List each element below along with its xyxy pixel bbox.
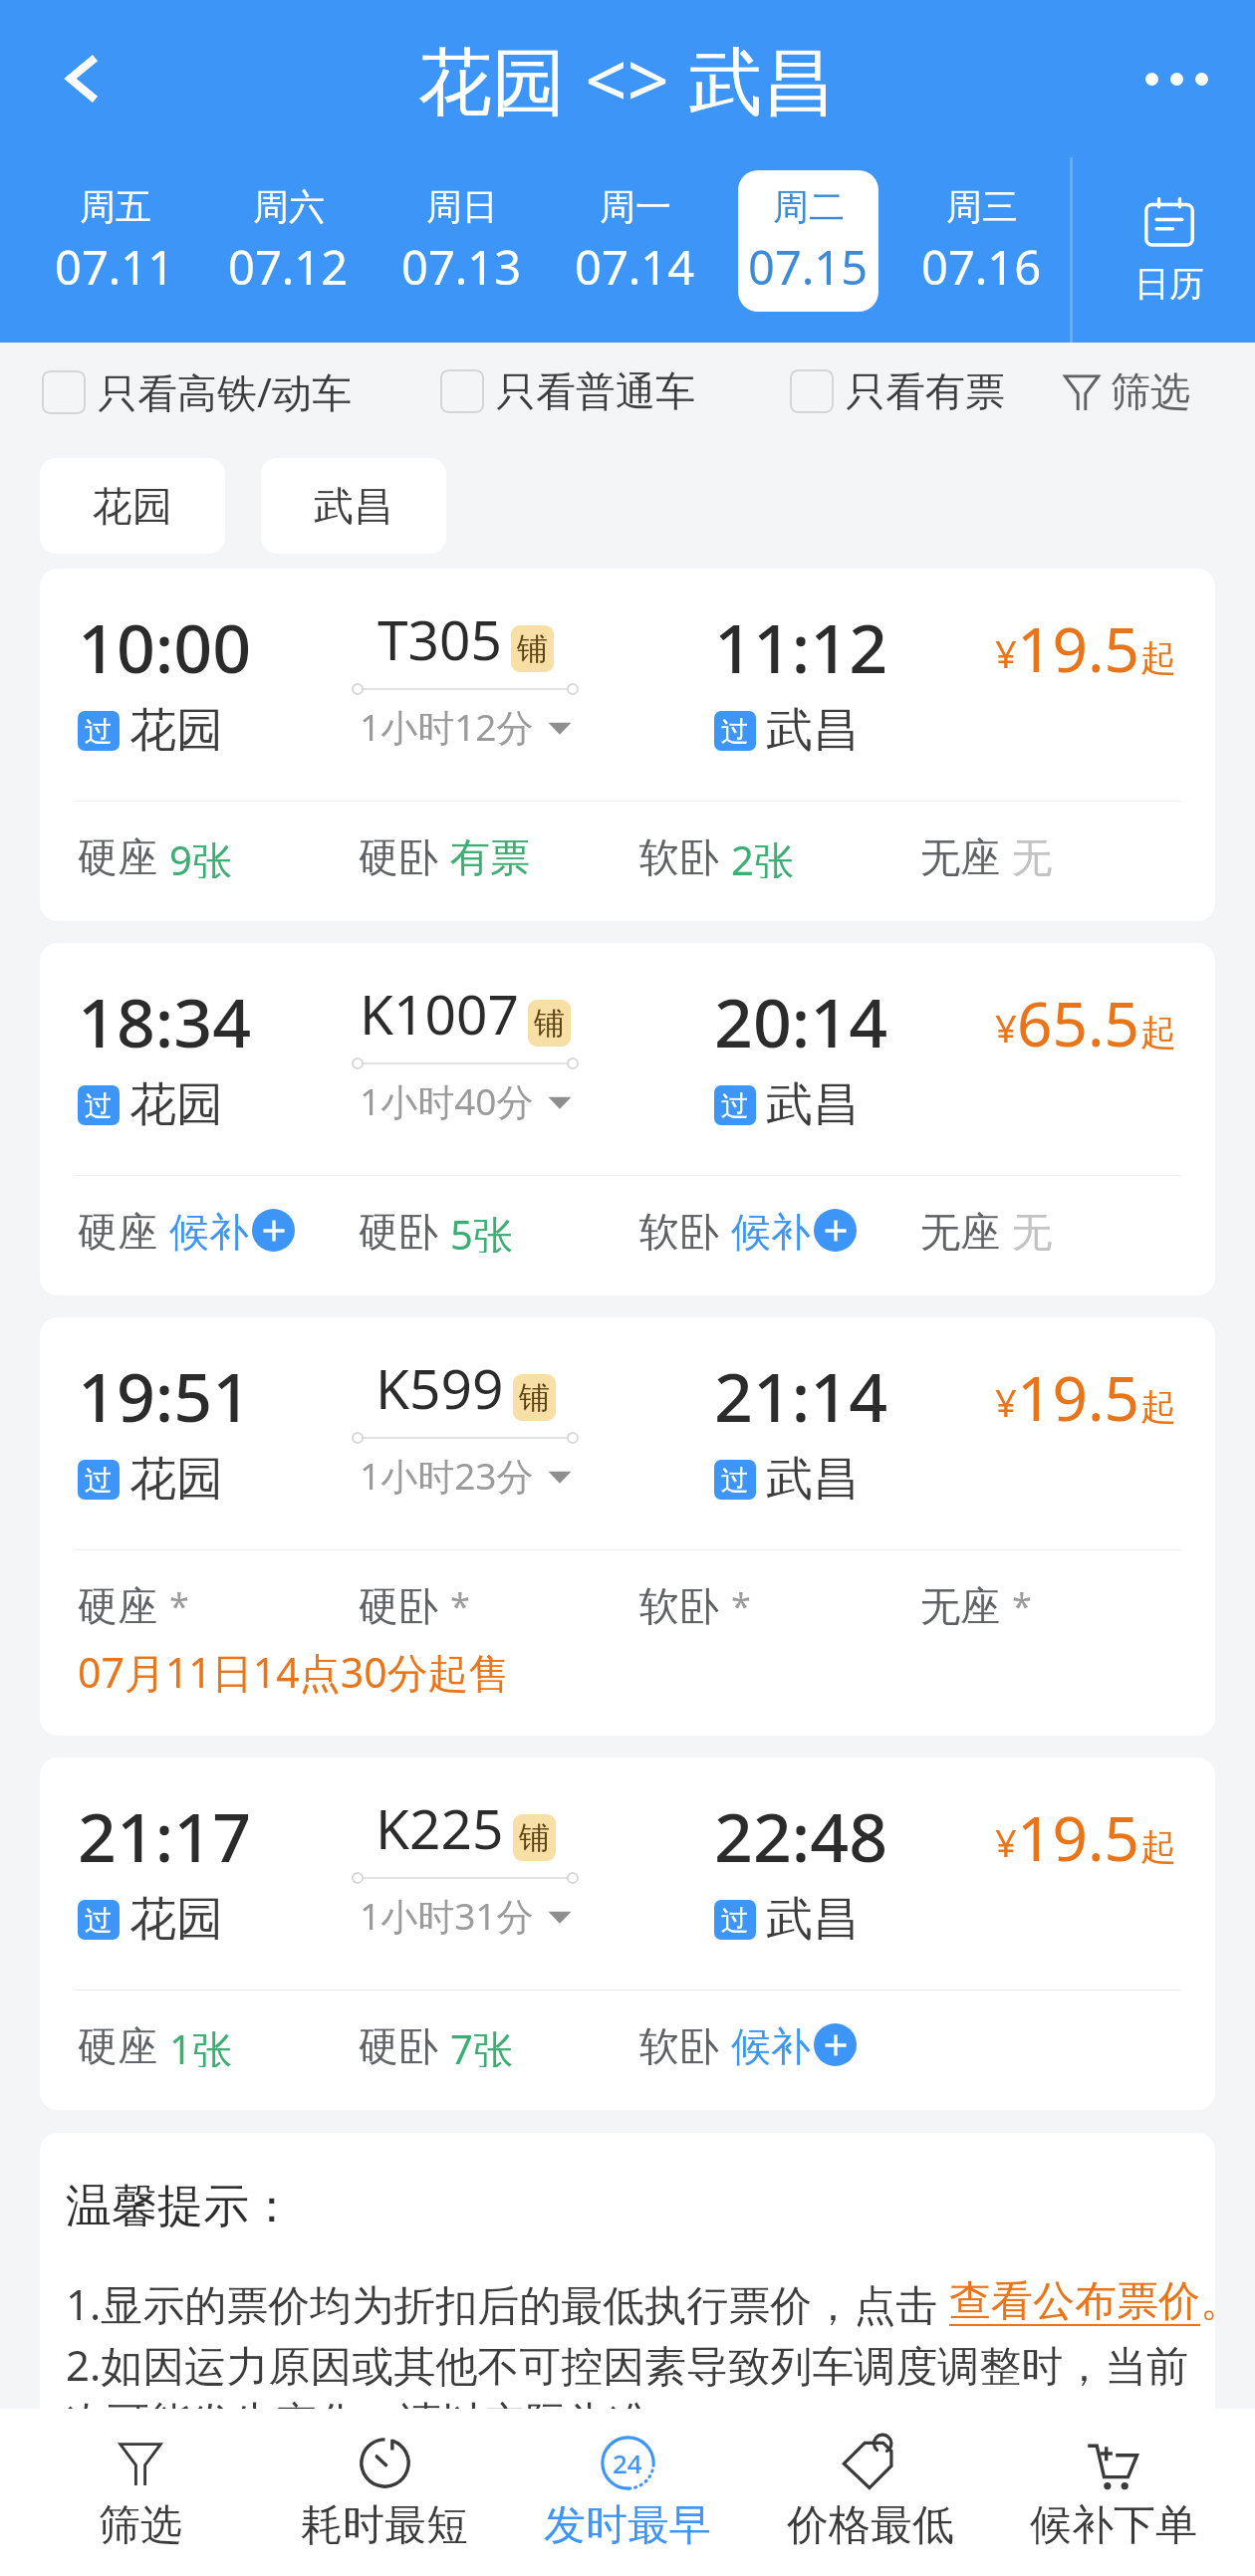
staticText: 只看普通车 [496, 366, 695, 416]
staticText: 周日 [426, 184, 498, 229]
staticText: 07.11 [55, 235, 175, 299]
button[interactable]: 19:51 [40, 1317, 1215, 1736]
staticText: 周五 [80, 184, 151, 229]
staticText: 软卧 [639, 1581, 719, 1627]
staticText: 花园 [129, 1450, 223, 1509]
staticText: 过 [85, 1903, 113, 1938]
staticText: K599 [376, 1350, 504, 1425]
staticText: 武昌 [766, 701, 860, 760]
staticText: 过 [85, 1088, 113, 1123]
button[interactable]: 10:00 [40, 569, 1215, 921]
button[interactable]: More options [1133, 36, 1219, 121]
staticText: 只看有票 [846, 366, 1005, 416]
staticText: 无座 [920, 1207, 1000, 1253]
staticText: ¥ [995, 627, 1017, 679]
staticText: 过 [721, 1088, 749, 1123]
staticText: * [450, 1581, 470, 1627]
staticText: 发时最早 [544, 2499, 711, 2552]
staticText: 花园 <> 武昌 [418, 29, 837, 129]
staticText: * [731, 1581, 751, 1627]
staticText: 周一 [600, 184, 671, 229]
staticText: 过 [721, 1903, 749, 1938]
staticText: 过 [85, 1463, 113, 1498]
button[interactable]: 周三 [894, 157, 1068, 325]
button[interactable]: 只看高铁/动车 [42, 364, 352, 419]
staticText: 11:12 [714, 600, 888, 693]
button[interactable]: 日历 [1088, 157, 1255, 343]
staticText: 硬座 [78, 1581, 157, 1627]
staticText: 筛选 [99, 2499, 182, 2552]
staticText: 硬卧 [359, 1207, 438, 1253]
staticText: 无座 [920, 832, 1000, 878]
button[interactable]: 周二 [721, 157, 894, 325]
staticText: 22:48 [714, 1789, 888, 1882]
staticText: 硬卧 [359, 2021, 438, 2067]
staticText: 温馨提示： [66, 2178, 295, 2235]
button[interactable]: 21:17 [40, 1757, 1215, 2110]
staticText: 筛选 [1111, 366, 1190, 416]
button[interactable]: 周六 [201, 157, 375, 325]
staticText: 07.13 [401, 235, 522, 299]
button[interactable]: 周一 [548, 157, 721, 325]
button[interactable]: 武昌 [261, 458, 446, 554]
button[interactable]: Back [40, 36, 125, 121]
staticText: 65.5 [1017, 981, 1140, 1064]
staticText: 武昌 [314, 481, 393, 531]
staticText: ¥ [995, 1376, 1017, 1428]
staticText: ¥ [995, 1816, 1017, 1868]
button[interactable]: 价格最低 [749, 2409, 992, 2576]
staticText: 有票 [450, 832, 530, 878]
staticText: 过 [721, 1463, 749, 1498]
staticText: 只看高铁/动车 [98, 364, 352, 419]
staticText: 硬卧 [359, 1581, 438, 1627]
button[interactable]: 周日 [375, 157, 548, 325]
button[interactable]: 只看有票 [790, 366, 1005, 416]
button[interactable]: 筛选 [18, 2409, 262, 2576]
staticText: 武昌 [766, 1075, 860, 1134]
staticText: 1张 [169, 2021, 232, 2067]
button[interactable]: 耗时最短 [262, 2409, 506, 2576]
staticText: 铺 [517, 629, 548, 668]
button[interactable]: 周五 [28, 157, 201, 325]
staticText: 1小时12分 [360, 701, 534, 752]
staticText: 软卧 [639, 2021, 719, 2067]
staticText: 软卧 [639, 1207, 719, 1253]
staticText: 24 [613, 2446, 642, 2480]
staticText: 无 [1012, 832, 1052, 878]
staticText: 候补下单 [1030, 2499, 1197, 2552]
staticText: 铺 [534, 1004, 565, 1043]
staticText: 无座 [920, 1581, 1000, 1627]
staticText: 武昌 [766, 1890, 860, 1949]
button[interactable]: 18:34 [40, 943, 1215, 1295]
staticText: 起 [1140, 635, 1176, 680]
staticText: 07.15 [748, 235, 869, 299]
staticText: 07.16 [921, 235, 1042, 299]
staticText: 硬座 [78, 1207, 157, 1253]
button[interactable]: 候补下单 [992, 2409, 1235, 2576]
staticText: 花园 [129, 1075, 223, 1134]
staticText: 候补 [731, 1207, 811, 1253]
staticText: 5张 [450, 1207, 513, 1253]
staticText: 周六 [253, 184, 325, 229]
staticText: 19.5 [1017, 1795, 1140, 1879]
staticText: 07.14 [575, 235, 695, 299]
button[interactable]: 24 [506, 2409, 749, 2576]
staticText: T305 [377, 601, 502, 676]
staticText: 候补 [731, 2021, 811, 2067]
staticText: 过 [721, 714, 749, 749]
staticText: 20:14 [714, 975, 888, 1067]
staticText: 铺 [519, 1378, 550, 1417]
staticText: 19.5 [1017, 1355, 1140, 1439]
staticText: 1小时31分 [360, 1890, 534, 1941]
staticText: 21:17 [78, 1789, 252, 1882]
staticText: * [169, 1581, 189, 1627]
staticText: 日历 [1134, 262, 1204, 306]
button[interactable]: 筛选 [1063, 366, 1190, 416]
staticText: 07.12 [228, 235, 349, 299]
button[interactable]: 花园 [40, 458, 225, 554]
staticText: 耗时最短 [301, 2499, 468, 2552]
staticText: 1小时40分 [360, 1075, 534, 1126]
staticText: 铺 [519, 1818, 550, 1857]
staticText: 候补 [169, 1207, 249, 1253]
button[interactable]: 只看普通车 [440, 366, 695, 416]
